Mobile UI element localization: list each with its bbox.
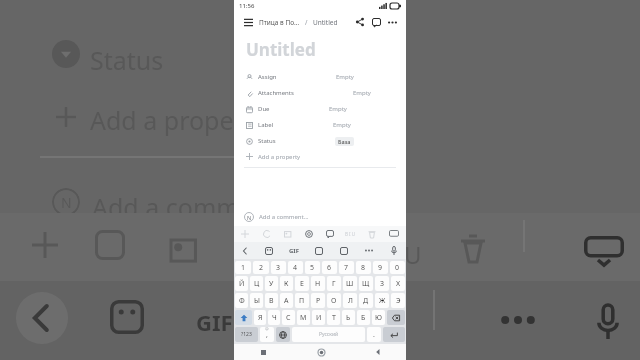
- button[interactable]: Ш: [343, 276, 357, 291]
- staticText: 9: [378, 263, 383, 273]
- button[interactable]: Add a property: [234, 149, 406, 164]
- button[interactable]: К: [280, 276, 293, 291]
- button[interactable]: Л: [343, 293, 357, 308]
- button[interactable]: А: [280, 293, 293, 308]
- button[interactable]: Assign: [234, 69, 406, 85]
- button[interactable]: Hide keyboard: [382, 226, 406, 242]
- button[interactable]: gif: [281, 242, 306, 259]
- button[interactable]: Ц: [250, 276, 263, 291]
- staticText: Я: [258, 313, 263, 323]
- staticText: Empty: [353, 89, 371, 97]
- button[interactable]: П: [295, 293, 309, 308]
- button[interactable]: Э: [391, 293, 405, 308]
- button[interactable]: О: [327, 293, 341, 308]
- button[interactable]: ,: [260, 327, 274, 342]
- button[interactable]: N: [234, 208, 406, 226]
- staticText: У: [269, 279, 274, 289]
- button[interactable]: 2: [253, 261, 269, 274]
- button[interactable]: Home: [310, 344, 332, 360]
- button[interactable]: undo: [256, 226, 277, 242]
- button[interactable]: Attachments: [234, 85, 406, 101]
- button[interactable]: Due: [234, 101, 406, 117]
- button[interactable]: Menu: [240, 14, 256, 30]
- staticText: 4: [293, 263, 298, 273]
- button[interactable]: Б: [357, 310, 370, 325]
- button[interactable]: У: [265, 276, 278, 291]
- button[interactable]: Русский: [292, 327, 365, 342]
- button[interactable]: Г: [327, 276, 341, 291]
- button[interactable]: plus: [234, 226, 256, 242]
- button[interactable]: 5: [305, 261, 320, 274]
- button[interactable]: И: [312, 310, 325, 325]
- button[interactable]: .: [367, 327, 381, 342]
- button[interactable]: Symbols: [235, 327, 258, 342]
- staticText: Empty: [333, 121, 351, 129]
- button[interactable]: 8: [356, 261, 371, 274]
- button[interactable]: dots: [356, 242, 381, 259]
- button[interactable]: Д: [359, 293, 373, 308]
- button[interactable]: Щ: [359, 276, 373, 291]
- button[interactable]: М: [297, 310, 310, 325]
- button[interactable]: Shift: [235, 310, 252, 325]
- button[interactable]: Enter: [383, 327, 405, 342]
- button[interactable]: Status: [234, 133, 406, 149]
- button[interactable]: image: [277, 226, 298, 242]
- button[interactable]: sticker: [256, 242, 281, 259]
- button[interactable]: Ч: [268, 310, 280, 325]
- button[interactable]: bubble: [319, 226, 340, 242]
- button[interactable]: Р: [311, 293, 325, 308]
- staticText: З: [380, 279, 385, 289]
- button[interactable]: Я: [254, 310, 266, 325]
- button[interactable]: Language: [276, 327, 290, 342]
- button[interactable]: Back: [234, 242, 256, 259]
- button[interactable]: Т: [327, 310, 340, 325]
- button[interactable]: Ь: [342, 310, 355, 325]
- button[interactable]: Backspace: [387, 310, 405, 325]
- staticText: А: [284, 296, 289, 306]
- button[interactable]: 3: [271, 261, 286, 274]
- button[interactable]: 6: [322, 261, 337, 274]
- staticText: П: [299, 296, 305, 306]
- button[interactable]: Label: [234, 117, 406, 133]
- button[interactable]: 4: [288, 261, 303, 274]
- button[interactable]: mic: [381, 242, 406, 259]
- button[interactable]: Share: [352, 14, 368, 30]
- button[interactable]: More options: [384, 14, 400, 30]
- button[interactable]: 0: [390, 261, 405, 274]
- button[interactable]: translate: [331, 242, 356, 259]
- staticText: Untitled: [246, 38, 316, 61]
- button[interactable]: Back: [367, 344, 389, 360]
- button[interactable]: С: [282, 310, 295, 325]
- button[interactable]: Ф: [235, 293, 248, 308]
- button[interactable]: at: [298, 226, 319, 242]
- staticText: 5: [310, 263, 315, 273]
- button[interactable]: clipboard: [306, 242, 331, 259]
- button[interactable]: Й: [235, 276, 248, 291]
- button[interactable]: 9: [373, 261, 388, 274]
- button[interactable]: Н: [311, 276, 325, 291]
- button[interactable]: В: [265, 293, 278, 308]
- button[interactable]: Ю: [372, 310, 385, 325]
- button[interactable]: 1: [235, 261, 251, 274]
- staticText: 1: [241, 263, 246, 273]
- staticText: Русский: [319, 331, 339, 338]
- button[interactable]: Ы: [250, 293, 263, 308]
- staticText: В: [269, 296, 274, 306]
- staticText: Х: [396, 279, 401, 289]
- button[interactable]: З: [375, 276, 389, 291]
- button[interactable]: trash: [361, 226, 382, 242]
- button[interactable]: biu: [340, 226, 361, 242]
- button[interactable]: Птица в По…: [259, 18, 300, 27]
- staticText: Г: [332, 279, 336, 289]
- button[interactable]: 7: [339, 261, 354, 274]
- staticText: Э: [396, 296, 401, 306]
- button[interactable]: Ж: [375, 293, 389, 308]
- staticText: О: [331, 296, 337, 306]
- button[interactable]: Recents: [252, 344, 274, 360]
- button[interactable]: Е: [295, 276, 309, 291]
- staticText: База: [338, 138, 351, 145]
- button[interactable]: Comments: [368, 14, 384, 30]
- button[interactable]: Х: [391, 276, 405, 291]
- staticText: Ш: [346, 279, 354, 289]
- staticText: B I U: [345, 231, 356, 237]
